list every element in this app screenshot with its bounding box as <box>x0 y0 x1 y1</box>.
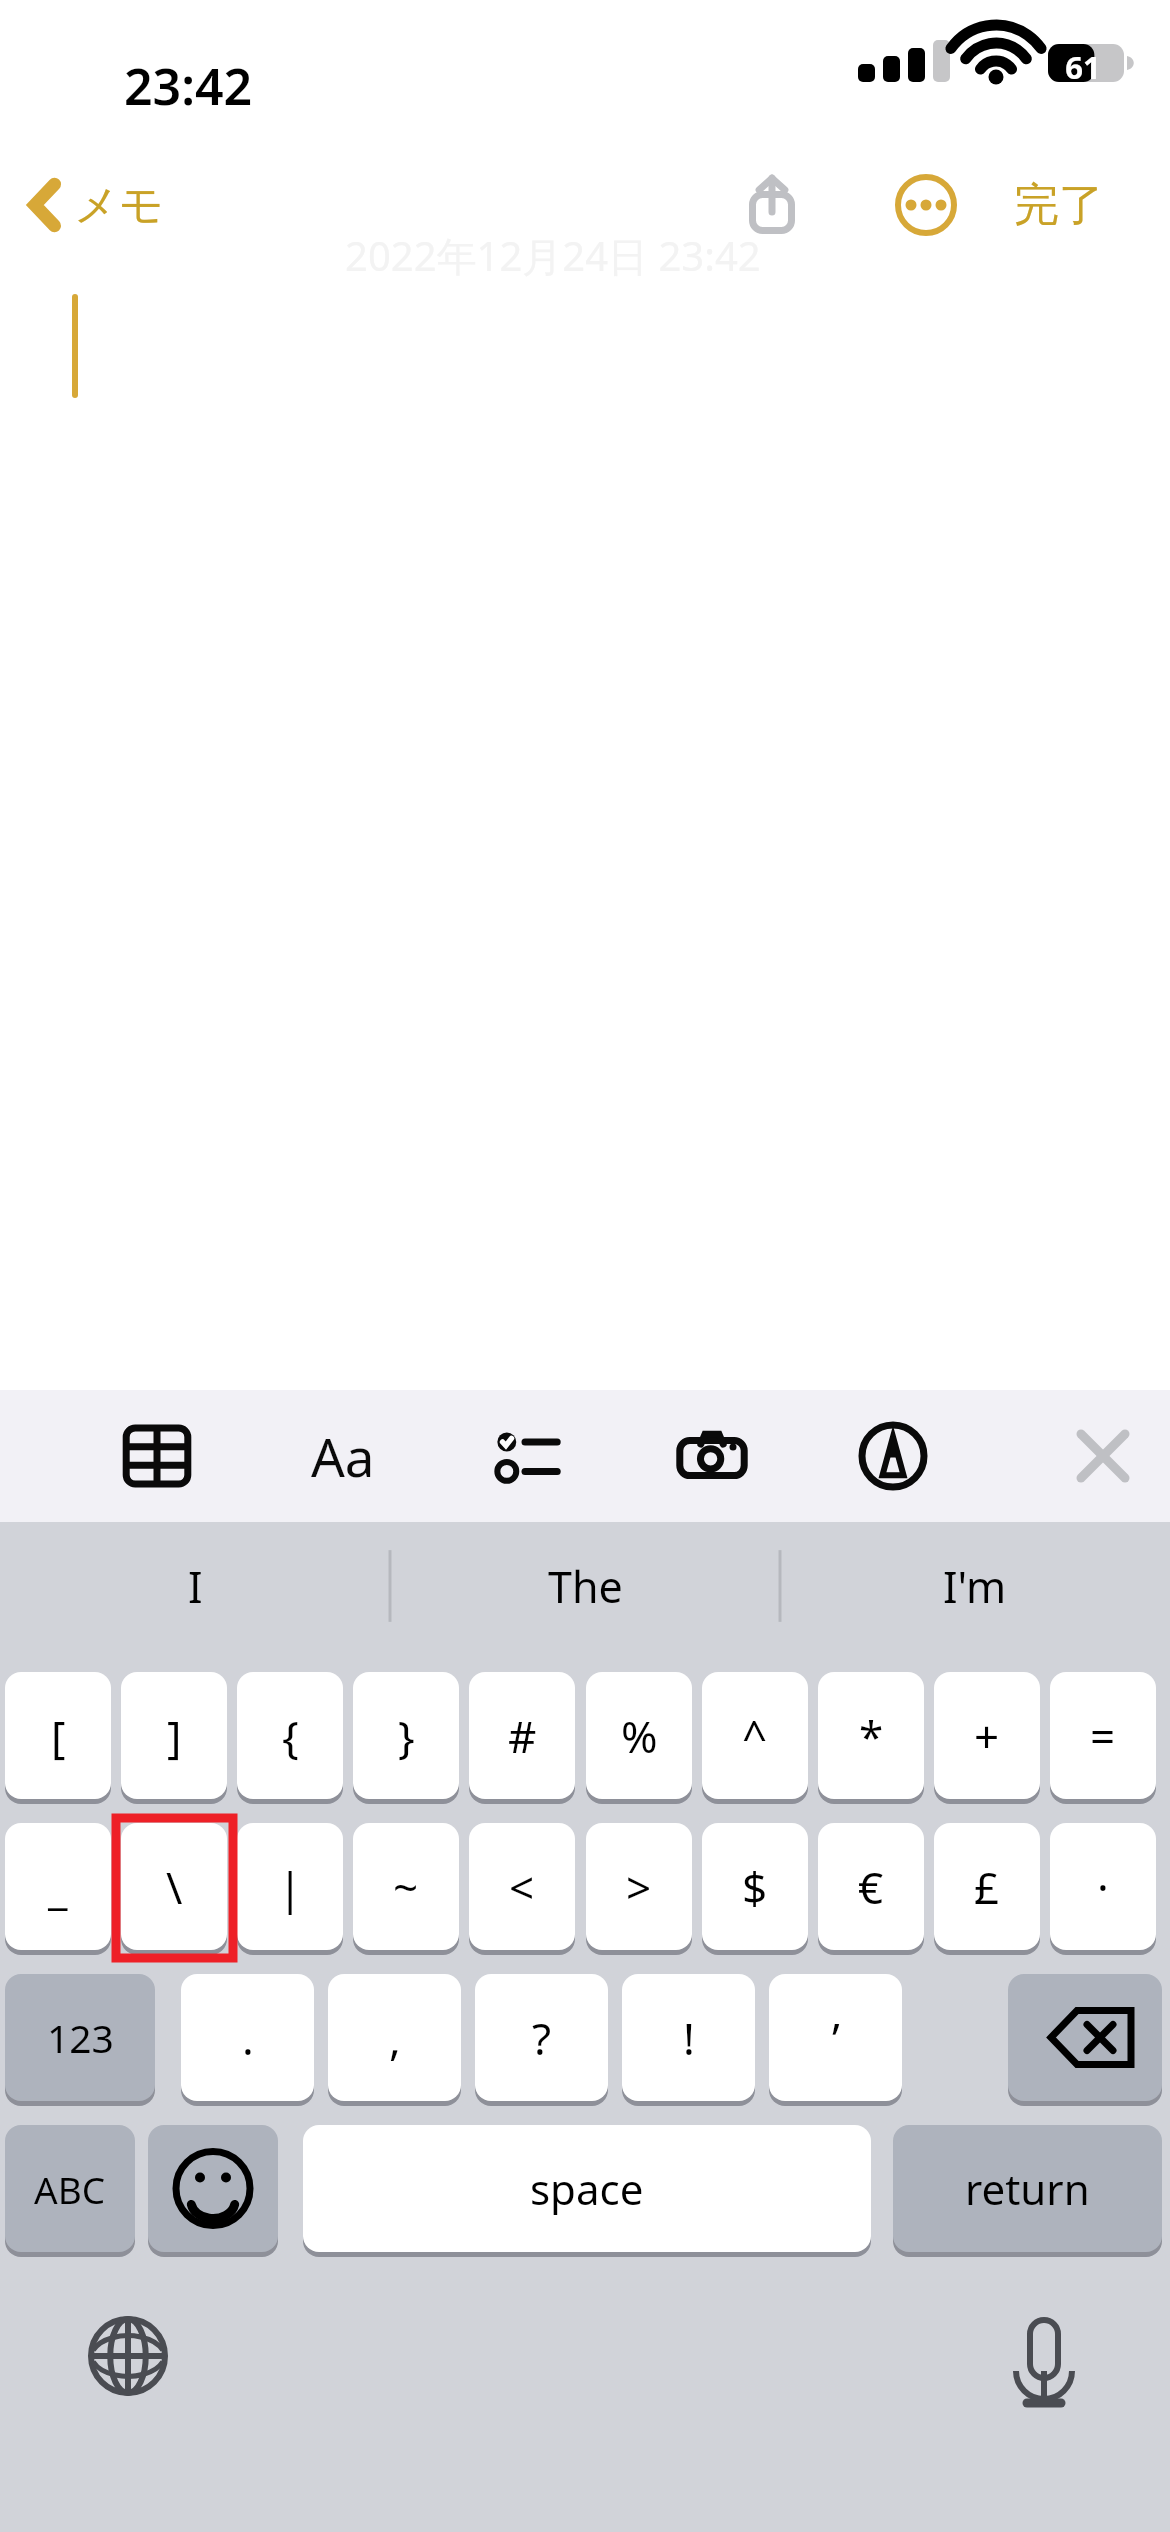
button[interactable]: ! <box>622 1974 755 2101</box>
button[interactable]: < <box>469 1823 575 1950</box>
staticText: < <box>509 1857 535 1917</box>
button[interactable]: # <box>469 1672 575 1799</box>
button[interactable]: , <box>328 1974 461 2101</box>
button[interactable]: $ <box>702 1823 808 1950</box>
button[interactable]: Backspace <box>1008 1974 1162 2101</box>
staticText: ~ <box>393 1857 419 1917</box>
staticText: I <box>188 1557 203 1616</box>
staticText: ^ <box>742 1706 768 1766</box>
button[interactable]: Format <box>283 1390 403 1522</box>
button[interactable]: 123 <box>5 1974 155 2101</box>
button[interactable]: return <box>893 2125 1162 2252</box>
button[interactable]: . <box>181 1974 314 2101</box>
button[interactable]: Dictation <box>988 2300 1100 2412</box>
button[interactable]: Close keyboard <box>1043 1390 1163 1522</box>
button[interactable]: ] <box>121 1672 227 1799</box>
staticText: · <box>1097 1857 1109 1917</box>
staticText: I'm <box>943 1557 1007 1616</box>
button[interactable]: { <box>237 1672 343 1799</box>
staticText: ! <box>683 2008 695 2068</box>
staticText: £ <box>974 1857 1000 1917</box>
staticText: 2022年12月24日 23:42 <box>345 228 761 283</box>
staticText: > <box>626 1857 652 1917</box>
button[interactable]: Share <box>712 150 832 260</box>
staticText: } <box>398 1706 415 1766</box>
staticText: space <box>530 2160 644 2217</box>
button[interactable]: I'm <box>780 1522 1170 1650</box>
button[interactable]: _ <box>5 1823 111 1950</box>
button[interactable]: Aa <box>283 1390 403 1522</box>
button[interactable]: ~ <box>353 1823 459 1950</box>
staticText: % <box>621 1706 658 1766</box>
staticText: € <box>858 1857 884 1917</box>
button[interactable]: ’ <box>769 1974 902 2101</box>
button[interactable]: + <box>934 1672 1040 1799</box>
button[interactable]: Emoji <box>148 2125 278 2252</box>
button[interactable]: メモ <box>16 150 177 260</box>
staticText: . <box>242 2008 254 2068</box>
button[interactable]: | <box>237 1823 343 1950</box>
button[interactable]: space <box>303 2125 871 2252</box>
staticText: ’ <box>832 2008 840 2068</box>
button[interactable]: € <box>818 1823 924 1950</box>
button[interactable]: ABC <box>5 2125 135 2252</box>
staticText: [ <box>51 1706 66 1766</box>
staticText: \ <box>166 1857 183 1917</box>
button[interactable]: Markup <box>833 1390 953 1522</box>
button[interactable]: The <box>390 1522 780 1650</box>
button[interactable]: Change keyboard <box>72 2300 184 2412</box>
staticText: # <box>508 1706 537 1766</box>
staticText: 完了 <box>1014 177 1104 234</box>
staticText: メモ <box>74 178 165 233</box>
button[interactable]: } <box>353 1672 459 1799</box>
staticText: * <box>859 1706 884 1766</box>
button[interactable]: > <box>586 1823 692 1950</box>
staticText: + <box>974 1706 1000 1766</box>
staticText: = <box>1090 1706 1116 1766</box>
button[interactable]: * <box>818 1672 924 1799</box>
button[interactable]: · <box>1050 1823 1156 1950</box>
staticText: return <box>965 2160 1090 2217</box>
staticText: 61 <box>1052 46 1114 88</box>
button[interactable]: Camera <box>652 1390 772 1522</box>
button[interactable]: % <box>586 1672 692 1799</box>
staticText: ? <box>532 2008 552 2068</box>
staticText: 123 <box>47 2011 114 2064</box>
staticText: , <box>389 2008 401 2068</box>
button[interactable]: Checklist <box>465 1390 585 1522</box>
staticText: The <box>548 1557 623 1616</box>
staticText: { <box>282 1706 299 1766</box>
button[interactable]: £ <box>934 1823 1040 1950</box>
button[interactable]: I <box>0 1522 390 1650</box>
button[interactable]: [ <box>5 1672 111 1799</box>
button[interactable]: ? <box>475 1974 608 2101</box>
button[interactable]: 完了 <box>1000 150 1118 260</box>
staticText: Aa <box>311 1420 375 1492</box>
button[interactable]: = <box>1050 1672 1156 1799</box>
button[interactable]: ^ <box>702 1672 808 1799</box>
button[interactable]: \ <box>121 1823 227 1950</box>
staticText: $ <box>742 1857 768 1917</box>
staticText: ABC <box>34 2164 106 2214</box>
button[interactable]: Table <box>97 1390 217 1522</box>
staticText: _ <box>48 1857 68 1917</box>
staticText: 23:42 <box>124 52 253 120</box>
button[interactable]: More <box>866 150 986 260</box>
staticText: | <box>278 1857 303 1917</box>
staticText: ] <box>167 1706 182 1766</box>
